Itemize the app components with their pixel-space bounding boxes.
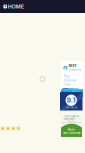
staticText: 2 0 1 5 — [68, 121, 75, 123]
staticText: HOME — [8, 3, 24, 10]
button[interactable]: Home — [3, 0, 8, 13]
staticText: BEST — [69, 64, 77, 68]
staticText: 9.1 — [67, 96, 76, 104]
staticText: Certificate of Excellence — [64, 115, 79, 120]
staticText: REVIEWS — [72, 90, 80, 96]
staticText: Nolo — [68, 128, 75, 131]
staticText: The Criminal Law — [63, 74, 76, 86]
button[interactable]: 5.0 — [62, 91, 70, 96]
button[interactable]: Avvo rating 9.1 — [60, 92, 82, 110]
staticText: Avvo Rating — [66, 106, 77, 109]
staticText: Top Attorney — [63, 132, 80, 135]
button[interactable]: HOME — [8, 0, 24, 13]
button[interactable]: Nolo certificate of excellence — [61, 116, 82, 137]
staticText: LAWYERS — [69, 68, 82, 71]
